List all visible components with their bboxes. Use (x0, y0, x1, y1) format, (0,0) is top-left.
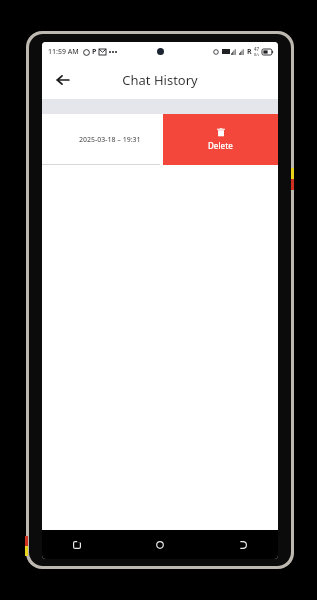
button[interactable]: Recents (66, 534, 88, 556)
staticText: B/s (254, 52, 260, 57)
button[interactable]: Back (232, 534, 254, 556)
staticText: Chat History (122, 71, 198, 89)
button[interactable]: Home (149, 534, 171, 556)
staticText: 11:59 AM (48, 47, 79, 57)
button[interactable]: Delete (163, 114, 278, 165)
staticText: Delete (208, 140, 233, 151)
staticText: P (92, 47, 97, 57)
staticText: R (247, 47, 252, 57)
button[interactable]: 2025-03-18 – 19:31 (42, 114, 278, 165)
button[interactable]: Back (50, 67, 76, 93)
staticText: 2025-03-18 – 19:31 (79, 135, 141, 145)
staticText: 47 (254, 46, 260, 52)
